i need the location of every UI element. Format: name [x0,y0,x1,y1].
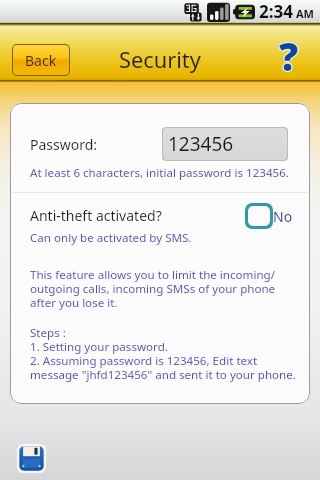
staticText: This feature allows you to limit the inc… [30,267,276,310]
staticText: 2:34 [259,0,293,23]
staticText: ? [279,30,299,74]
staticText: ? [279,31,299,75]
staticText: ? [279,29,299,73]
staticText: ? [280,30,300,74]
button[interactable]: Save [17,444,46,473]
staticText: Steps : 1. Setting your password. 2. Ass… [30,325,296,382]
staticText: ? [278,30,298,74]
button[interactable]: 123456 [163,128,287,160]
staticText: No [273,207,293,226]
button[interactable]: Back [13,45,69,75]
button[interactable]: Help [267,30,311,74]
staticText: AM [296,6,314,21]
staticText: Password: [30,135,98,154]
staticText: 123456 [168,131,234,157]
staticText: At least 6 characters, initial password … [30,165,289,181]
staticText: Security [119,45,201,75]
staticText: Back [25,51,57,70]
staticText: Can only be activated by SMS. [30,230,192,246]
button[interactable]: No [245,203,293,229]
staticText: Anti-theft activated? [30,206,162,225]
